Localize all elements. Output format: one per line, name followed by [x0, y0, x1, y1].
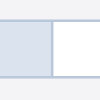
button[interactable]: Selected cell	[0, 20, 53, 79]
button[interactable]: Empty cell	[53, 20, 100, 79]
